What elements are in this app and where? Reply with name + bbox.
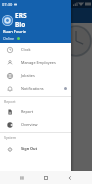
button[interactable]: Notifications [0, 82, 71, 95]
staticText: Bio [15, 20, 26, 29]
button[interactable]: Home [39, 171, 53, 184]
button[interactable]: Report [0, 105, 71, 118]
staticText: ERS [15, 11, 27, 20]
staticText: 07:30 [2, 2, 13, 7]
button[interactable]: Clock [0, 43, 71, 56]
staticText: Report [21, 109, 34, 114]
staticText: Ruan Fourie [3, 29, 27, 34]
staticText: Overview [21, 122, 38, 127]
staticText: Manage Employees [21, 60, 56, 65]
staticText: Clock [21, 47, 31, 52]
staticText: Notifications [21, 86, 44, 91]
staticText: 07:30 [2, 2, 13, 7]
staticText: Sign Out [21, 146, 38, 151]
button[interactable]: Back [63, 171, 77, 184]
staticText: Report [4, 99, 16, 104]
staticText: System [4, 135, 17, 140]
button[interactable]: Manage Employees [0, 56, 71, 69]
button[interactable]: Sign Out [0, 142, 71, 155]
button[interactable]: Recent apps [15, 171, 29, 184]
button[interactable]: Overview [0, 118, 71, 131]
staticText: Jobsites [21, 73, 35, 78]
staticText: Online [3, 36, 15, 41]
button[interactable]: Jobsites [0, 69, 71, 82]
